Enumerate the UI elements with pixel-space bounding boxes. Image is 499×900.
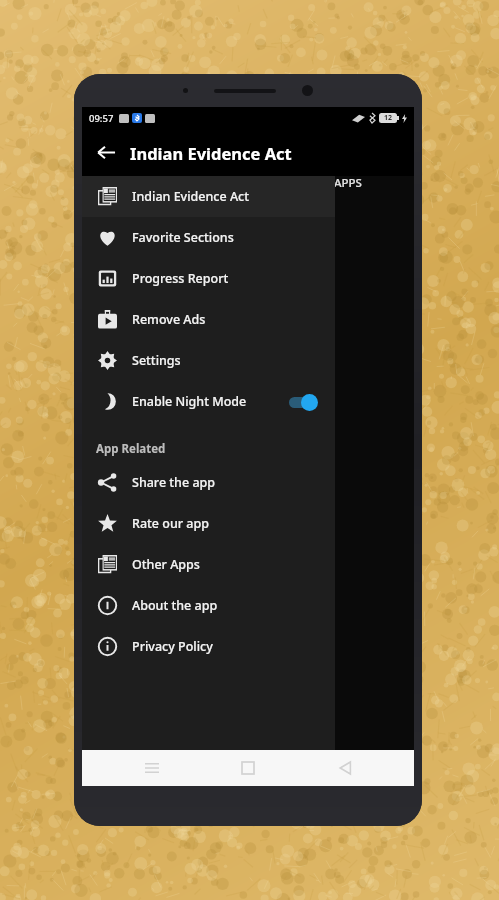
- staticText: Other Apps: [132, 556, 335, 573]
- button[interactable]: Privacy Policy: [82, 626, 335, 667]
- button[interactable]: Favorite Sections: [82, 217, 335, 258]
- staticText: Settings: [132, 352, 335, 369]
- staticText: Witnesses Sections 118 to: [110, 509, 370, 526]
- button[interactable]: Home: [221, 750, 275, 786]
- staticText: Preliminary (Sections 1 to 4): [110, 204, 370, 221]
- staticText: Documentary Evidence: [110, 374, 370, 391]
- staticText: Indian Evidence Act: [130, 142, 292, 164]
- staticText: 09:57: [89, 112, 114, 125]
- button[interactable]: Other Apps: [82, 544, 335, 585]
- staticText: Exclusion of Oral By Documentary 91 to 1…: [110, 411, 370, 445]
- button[interactable]: Enable Night Mode: [82, 381, 335, 422]
- button[interactable]: Back: [318, 750, 372, 786]
- button[interactable]: Recents: [125, 750, 179, 786]
- staticText: Share the app: [132, 474, 335, 491]
- staticText: Oral Evidence Sections 59 - 60: [110, 329, 370, 346]
- button[interactable]: Progress Report: [82, 258, 335, 299]
- button[interactable]: About the app: [82, 585, 335, 626]
- staticText: Indian Evidence Act: [132, 188, 335, 205]
- staticText: APPS: [334, 175, 362, 191]
- button[interactable]: Settings: [82, 340, 335, 381]
- staticText: Facts Which Need Not Be Proved: [110, 279, 370, 296]
- button[interactable]: Back: [82, 129, 130, 176]
- staticText: Facts & Relevancy of Facts: [110, 244, 370, 261]
- staticText: Remove Ads: [132, 311, 335, 328]
- staticText: Enable Night Mode: [132, 393, 285, 410]
- staticText: Burden of Proof: [110, 476, 370, 493]
- button[interactable]: Rate our app: [82, 503, 335, 544]
- staticText: App Related: [96, 441, 166, 457]
- button[interactable]: Remove Ads: [82, 299, 335, 340]
- staticText: Privacy Policy: [132, 638, 335, 655]
- staticText: Favorite Sections: [132, 229, 335, 246]
- staticText: Progress Report: [132, 270, 335, 287]
- staticText: 12: [384, 113, 393, 123]
- button[interactable]: Indian Evidence Act: [82, 176, 335, 217]
- staticText: About the app: [132, 597, 335, 614]
- staticText: Rate our app: [132, 515, 335, 532]
- button[interactable]: Share the app: [82, 462, 335, 503]
